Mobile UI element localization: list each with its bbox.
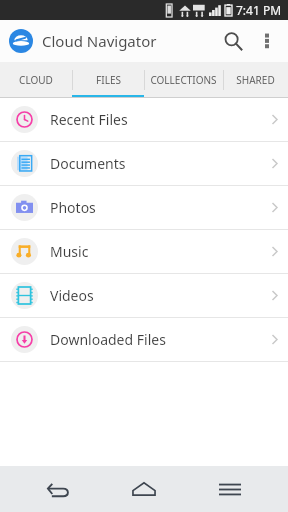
staticText: Videos xyxy=(50,286,94,305)
staticText: Documents xyxy=(50,154,126,173)
button[interactable]: Recent Files xyxy=(0,98,288,141)
button[interactable]: App icon xyxy=(9,29,33,53)
button[interactable]: Downloaded Files xyxy=(0,318,288,361)
staticText: CLOUD xyxy=(19,73,53,87)
button[interactable]: Documents xyxy=(0,142,288,185)
button[interactable]: Home xyxy=(116,466,172,512)
staticText: Photos xyxy=(50,198,96,217)
button[interactable]: Menu xyxy=(202,466,258,512)
staticText: COLLECTIONS xyxy=(150,73,217,87)
button[interactable]: Photos xyxy=(0,186,288,229)
button[interactable]: Music xyxy=(0,230,288,273)
button[interactable]: FILES xyxy=(72,62,144,98)
button[interactable]: CLOUD xyxy=(0,62,72,98)
button[interactable]: Search xyxy=(214,22,252,60)
button[interactable]: More options xyxy=(252,26,282,56)
button[interactable]: SHARED xyxy=(223,62,288,98)
staticText: Cloud Navigator xyxy=(42,31,157,51)
staticText: Recent Files xyxy=(50,110,128,129)
button[interactable]: Back xyxy=(30,466,86,512)
button[interactable]: Videos xyxy=(0,274,288,317)
staticText: FILES xyxy=(96,73,121,87)
staticText: Music xyxy=(50,242,89,261)
staticText: SHARED xyxy=(236,73,275,87)
staticText: 7:41 PM xyxy=(236,2,282,18)
button[interactable]: COLLECTIONS xyxy=(144,62,223,98)
staticText: Downloaded Files xyxy=(50,330,166,349)
